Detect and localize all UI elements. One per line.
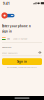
button[interactable]: Sign in — [2, 58, 42, 65]
staticText: Enter your phone n — [2, 24, 31, 28]
button[interactable]: +91 — [2, 36, 42, 43]
staticText: Mobile number — [13, 37, 28, 40]
staticText: Password — [2, 46, 11, 48]
staticText: 9:41 — [3, 2, 10, 6]
staticText: sign in — [2, 30, 12, 33]
staticText: By continuing, you agree to our Terms — [7, 66, 37, 68]
button[interactable]: Password — [2, 46, 42, 57]
staticText: +91 — [7, 37, 10, 40]
staticText: Enter password — [2, 51, 17, 54]
staticText: Sign in — [17, 60, 27, 63]
